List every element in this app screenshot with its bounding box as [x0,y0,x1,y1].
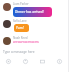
button[interactable]: Voice message [53,55,65,67]
button[interactable]: Dinner has arrived! [13,7,52,17]
button[interactable]: Liam avatar [3,3,11,11]
staticText: Liam Parker [13,2,29,6]
staticText: Dinner has arrived! [15,10,44,14]
staticText: Type a message here [3,50,35,54]
staticText: wwwwwwwwwww [13,40,39,44]
staticText: Yum! [16,26,24,30]
button[interactable]: Noah avatar [3,37,11,45]
button[interactable]: Sofia avatar [3,20,11,28]
staticText: Sofia Lane [13,19,27,23]
staticText: Noah Reed [13,36,28,40]
button[interactable]: Attach [19,55,31,67]
button[interactable]: Yum! [14,24,29,32]
button[interactable]: Emoji [2,55,14,67]
button[interactable]: Camera [36,55,48,67]
